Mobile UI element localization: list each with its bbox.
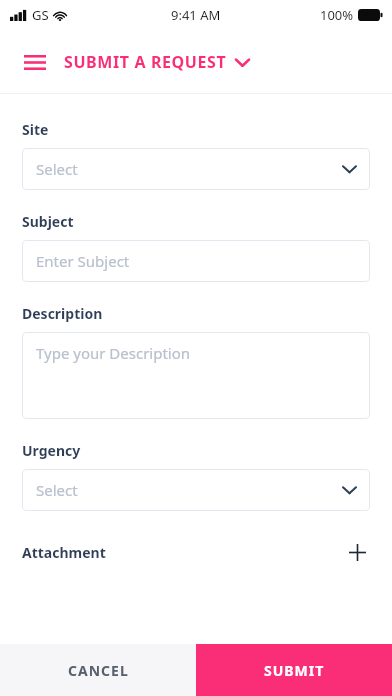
- staticText: Description: [22, 304, 103, 323]
- button[interactable]: CANCEL: [0, 644, 196, 696]
- staticText: SUBMIT: [264, 661, 325, 680]
- staticText: SUBMIT A REQUEST: [64, 51, 227, 73]
- button[interactable]: SUBMIT A REQUEST: [64, 51, 249, 73]
- button[interactable]: Open navigation menu: [20, 47, 50, 77]
- staticText: Attachment: [22, 543, 106, 562]
- button[interactable]: Add attachment: [344, 539, 370, 565]
- staticText: Site: [22, 120, 49, 139]
- button[interactable]: Select: [22, 469, 370, 511]
- staticText: Subject: [22, 212, 74, 231]
- button[interactable]: Enter Subject: [22, 240, 370, 282]
- staticText: Select: [36, 159, 78, 179]
- button[interactable]: Attachment: [22, 536, 370, 568]
- button[interactable]: SUBMIT: [196, 644, 392, 696]
- staticText: 100%: [320, 6, 354, 24]
- staticText: 9:41 AM: [171, 6, 221, 24]
- button[interactable]: Select: [22, 148, 370, 190]
- button[interactable]: Type your Description: [22, 332, 370, 419]
- staticText: CANCEL: [68, 661, 129, 680]
- staticText: Select: [36, 480, 78, 500]
- staticText: GS: [32, 6, 49, 24]
- staticText: Type your Description: [36, 343, 191, 363]
- staticText: Enter Subject: [36, 251, 130, 271]
- staticText: Urgency: [22, 441, 81, 460]
